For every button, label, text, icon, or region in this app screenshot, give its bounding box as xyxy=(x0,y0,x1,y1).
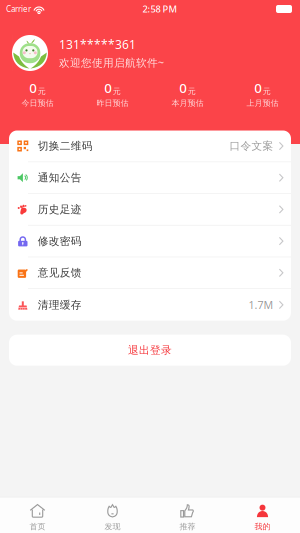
staticText: 退出登录 xyxy=(128,344,172,357)
button[interactable]: 修改密码 xyxy=(9,226,291,257)
button[interactable]: 切换二维码 xyxy=(9,130,291,162)
staticText: 通知公告 xyxy=(38,171,82,184)
staticText: 我的 xyxy=(254,522,270,532)
staticText: 2:58 PM xyxy=(142,3,177,15)
staticText: 历史足迹 xyxy=(38,203,82,216)
staticText: 切换二维码 xyxy=(38,139,93,152)
staticText: 修改密码 xyxy=(38,234,82,248)
button[interactable]: 我的 xyxy=(225,498,300,533)
button[interactable]: 清理缓存 xyxy=(9,289,291,321)
staticText: Carrier xyxy=(6,4,31,14)
staticText: 元 xyxy=(263,86,271,96)
staticText: 发现 xyxy=(104,522,120,532)
staticText: 欢迎您使用启航软件~ xyxy=(59,55,164,70)
staticText: 0 xyxy=(254,79,262,97)
staticText: 元 xyxy=(188,86,196,96)
staticText: 本月预估 xyxy=(171,98,203,108)
staticText: 清理缓存 xyxy=(38,298,82,311)
button[interactable]: 发现 xyxy=(75,498,150,533)
staticText: 元 xyxy=(113,86,121,96)
staticText: 上月预估 xyxy=(246,98,278,108)
button[interactable]: 推荐 xyxy=(150,498,225,533)
staticText: 1.7M xyxy=(248,298,273,312)
button[interactable]: 通知公告 xyxy=(9,162,291,194)
staticText: 元 xyxy=(38,86,46,96)
staticText: 0 xyxy=(104,79,112,97)
staticText: 昨日预估 xyxy=(96,98,128,108)
staticText: 131*****361 xyxy=(59,36,136,52)
staticText: 口令文案 xyxy=(229,139,273,152)
staticText: 首页 xyxy=(29,522,45,532)
button[interactable]: 历史足迹 xyxy=(9,194,291,226)
button[interactable]: 退出登录 xyxy=(9,335,291,366)
staticText: 0 xyxy=(29,79,37,97)
button[interactable]: 意见反馈 xyxy=(9,257,291,289)
staticText: 今日预估 xyxy=(21,98,53,108)
button[interactable]: 首页 xyxy=(0,498,75,533)
staticText: 0 xyxy=(179,79,187,97)
staticText: 推荐 xyxy=(179,522,195,532)
staticText: 意见反馈 xyxy=(38,266,82,279)
